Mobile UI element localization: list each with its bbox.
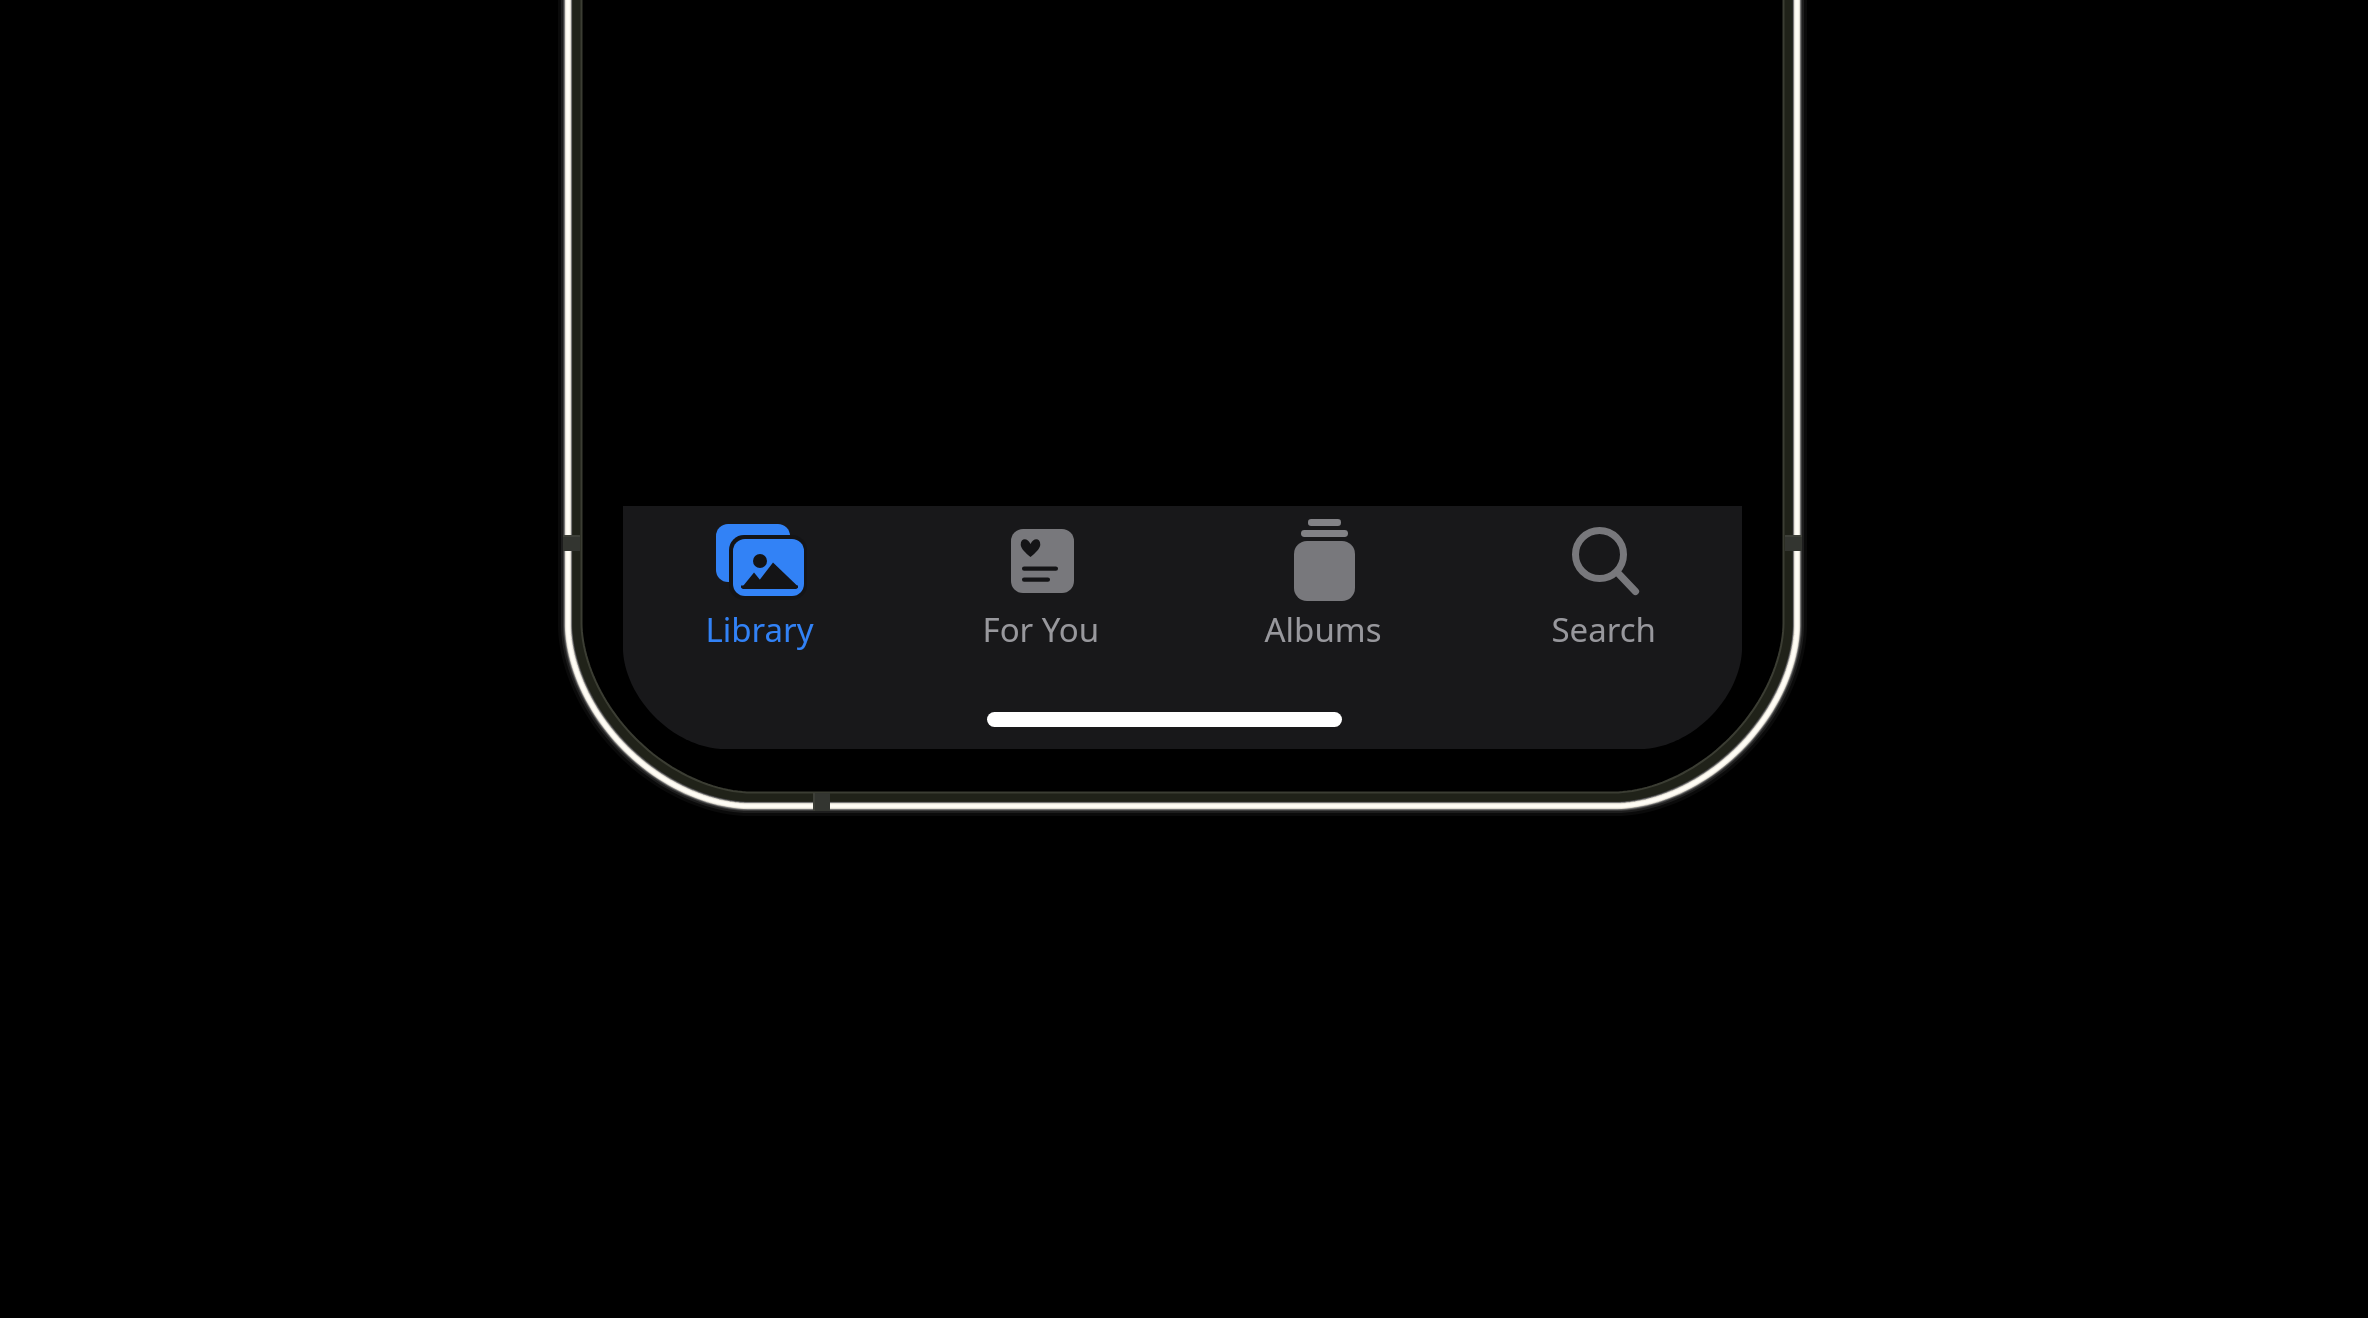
button[interactable]: Albums (1183, 506, 1463, 749)
button[interactable]: Search (1462, 506, 1742, 749)
button[interactable]: For You (903, 506, 1183, 749)
button[interactable]: Library (623, 506, 903, 749)
